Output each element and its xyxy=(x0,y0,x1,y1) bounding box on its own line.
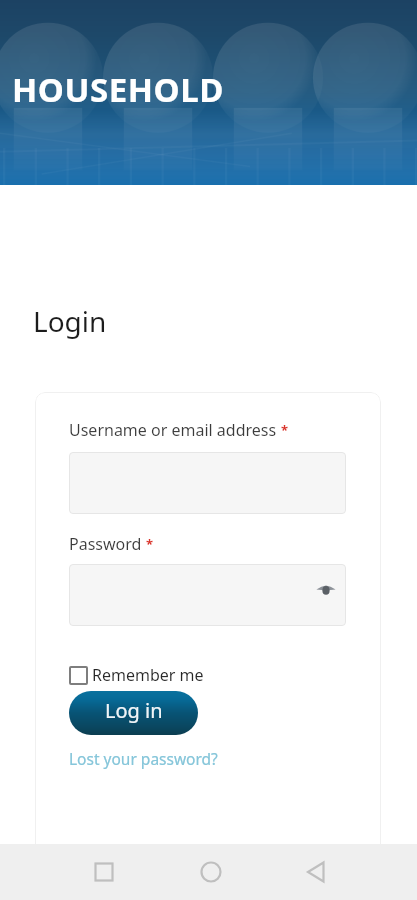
staticText: Remember me xyxy=(92,664,204,686)
button[interactable]: Show password xyxy=(313,577,339,603)
button[interactable] xyxy=(69,452,346,514)
button[interactable]: Home xyxy=(194,855,228,889)
staticText: * xyxy=(146,535,154,553)
staticText: Login xyxy=(33,302,107,340)
staticText: Username or email address xyxy=(69,419,277,441)
button[interactable]: Recents xyxy=(87,855,121,889)
staticText: HOUSEHOLD xyxy=(12,67,224,112)
staticText: * xyxy=(281,421,289,439)
staticText: Password xyxy=(69,533,142,555)
button[interactable]: Log in xyxy=(69,691,198,735)
button[interactable]: Lost your password? xyxy=(69,748,218,769)
button[interactable]: Back xyxy=(300,855,334,889)
button[interactable]: Show password xyxy=(69,564,346,626)
button[interactable]: Remember me xyxy=(69,664,204,686)
staticText: Log in xyxy=(105,697,163,724)
